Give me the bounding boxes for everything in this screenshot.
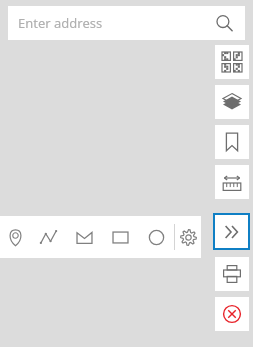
button[interactable]: Print	[215, 257, 249, 291]
staticText: Enter address	[18, 14, 103, 32]
button[interactable]: Measure	[215, 165, 249, 199]
button[interactable]: Basemap	[215, 45, 249, 79]
button[interactable]: Settings	[175, 216, 201, 258]
button[interactable]: Expand	[213, 213, 250, 250]
button[interactable]: Line	[30, 216, 66, 258]
other: Search	[215, 14, 233, 32]
button[interactable]: Enter address	[8, 6, 245, 40]
button[interactable]: Rectangle	[102, 216, 138, 258]
button[interactable]: Clear	[215, 297, 249, 331]
button[interactable]: Point	[0, 216, 30, 258]
button[interactable]: Bookmarks	[215, 125, 249, 159]
button[interactable]: Circle	[138, 216, 174, 258]
button[interactable]: Layers	[215, 85, 249, 119]
button[interactable]: Polygon	[66, 216, 102, 258]
